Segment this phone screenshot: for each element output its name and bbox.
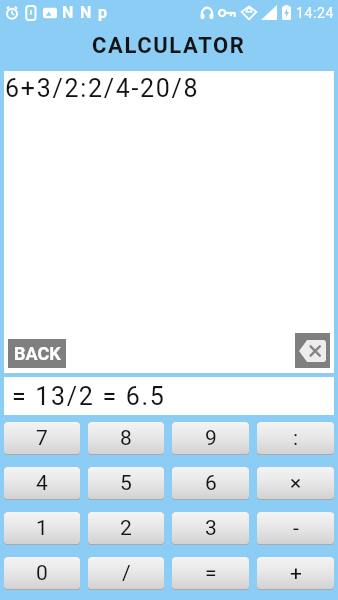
staticText: 9 bbox=[205, 426, 217, 451]
button[interactable]: 3 bbox=[172, 512, 249, 544]
staticText: : bbox=[293, 426, 299, 451]
staticText: BACK bbox=[14, 343, 61, 364]
staticText: N bbox=[80, 3, 92, 22]
staticText: N bbox=[62, 3, 74, 22]
button[interactable]: 8 bbox=[88, 422, 164, 454]
staticText: 4 bbox=[36, 471, 48, 496]
staticText: × bbox=[290, 471, 302, 496]
button[interactable]: × bbox=[257, 467, 334, 499]
staticText: CALCULATOR bbox=[92, 33, 246, 59]
button[interactable] bbox=[295, 333, 330, 368]
staticText: 7 bbox=[36, 426, 48, 451]
staticText: 0 bbox=[36, 561, 48, 586]
button[interactable]: 4 bbox=[4, 467, 80, 499]
button[interactable]: 6+3/2:2/4-20/8 bbox=[4, 71, 334, 373]
staticText: 6+3/2:2/4-20/8 bbox=[5, 74, 200, 103]
staticText: + bbox=[290, 561, 302, 586]
staticText: 14:24 bbox=[296, 5, 334, 21]
button[interactable]: : bbox=[257, 422, 334, 454]
button[interactable]: 9 bbox=[172, 422, 249, 454]
staticText: 6 bbox=[205, 471, 217, 496]
staticText: 5 bbox=[120, 471, 132, 496]
button[interactable]: 2 bbox=[88, 512, 164, 544]
staticText: 2 bbox=[120, 516, 132, 541]
button[interactable]: = bbox=[172, 557, 249, 589]
button[interactable]: 7 bbox=[4, 422, 80, 454]
staticText: 1 bbox=[36, 516, 48, 541]
staticText: = bbox=[205, 561, 217, 586]
staticText: 3 bbox=[205, 516, 217, 541]
button[interactable]: 0 bbox=[4, 557, 80, 589]
button[interactable]: + bbox=[257, 557, 334, 589]
staticText: / bbox=[122, 561, 131, 586]
button[interactable]: 5 bbox=[88, 467, 164, 499]
staticText: 8 bbox=[120, 426, 132, 451]
button[interactable]: 1 bbox=[4, 512, 80, 544]
button[interactable]: / bbox=[88, 557, 164, 589]
button[interactable]: - bbox=[257, 512, 334, 544]
staticText: = 13/2 = 6.5 bbox=[12, 382, 166, 411]
button[interactable]: BACK bbox=[8, 339, 66, 368]
staticText: p bbox=[98, 3, 108, 22]
staticText: - bbox=[293, 516, 299, 541]
button[interactable]: 6 bbox=[172, 467, 249, 499]
